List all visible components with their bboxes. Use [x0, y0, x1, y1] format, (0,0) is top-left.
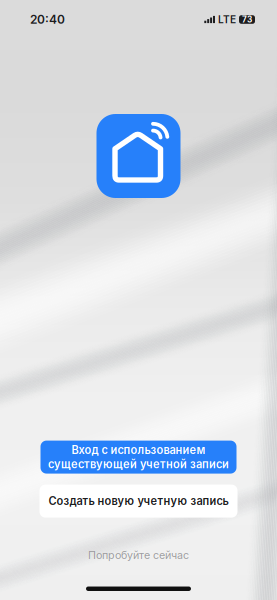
staticText: Вход с использованием	[71, 443, 205, 457]
staticText: 73	[242, 14, 252, 24]
staticText: Попробуйте сейчас	[88, 549, 189, 561]
button[interactable]: Вход с использованием	[40, 441, 236, 474]
staticText: LTE	[218, 13, 236, 26]
staticText: существующей учетной записи	[48, 458, 229, 471]
staticText: Создать новую учетную запись	[48, 494, 228, 508]
button[interactable]: Попробуйте сейчас	[88, 549, 189, 561]
staticText: 20:40	[30, 12, 65, 27]
button[interactable]: Создать новую учетную запись	[39, 485, 237, 518]
